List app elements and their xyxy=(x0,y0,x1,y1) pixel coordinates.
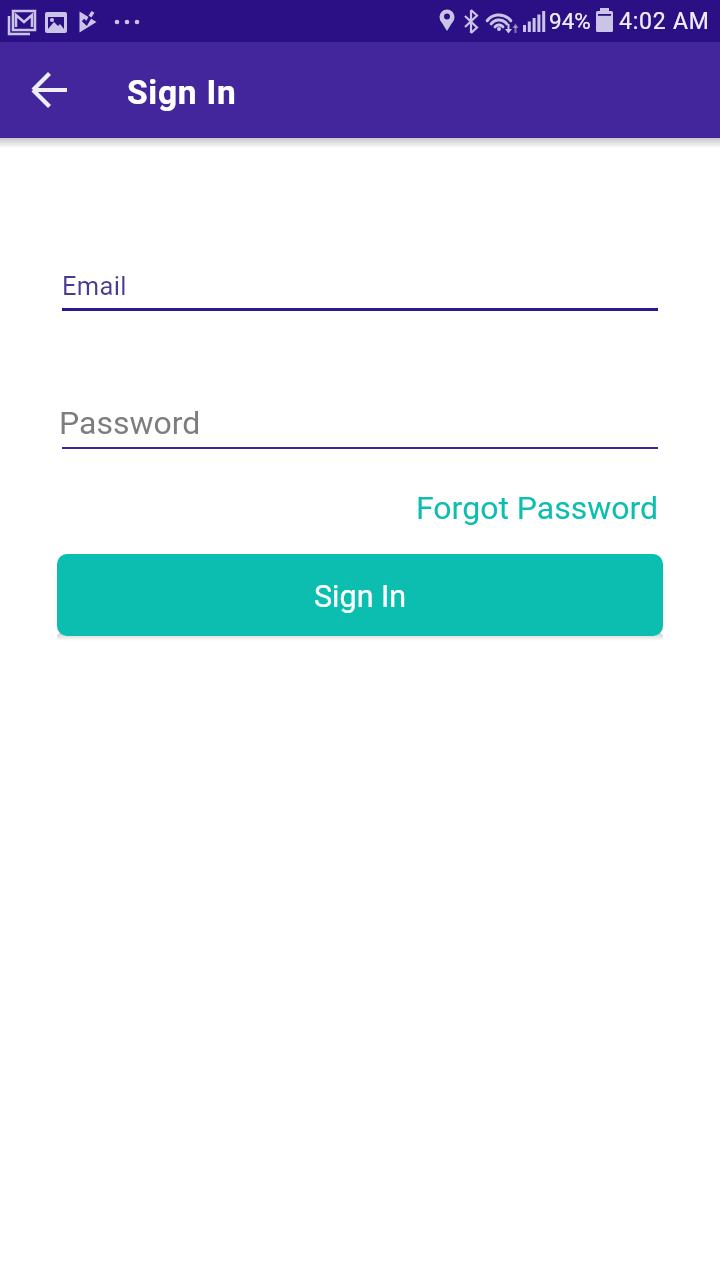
staticText: Password xyxy=(59,404,201,442)
button[interactable]: Forgot Password xyxy=(400,480,670,530)
staticText: 4:02 AM xyxy=(619,8,710,35)
staticText: Sign In xyxy=(314,579,407,615)
staticText: Sign In xyxy=(127,73,237,112)
staticText: Email xyxy=(62,271,127,301)
button[interactable]: Password xyxy=(50,390,670,460)
staticText: Forgot Password xyxy=(416,489,659,527)
staticText: 94% xyxy=(549,8,591,34)
button[interactable]: Email xyxy=(50,250,670,320)
button[interactable] xyxy=(22,63,76,117)
button[interactable]: Sign In xyxy=(57,554,663,636)
